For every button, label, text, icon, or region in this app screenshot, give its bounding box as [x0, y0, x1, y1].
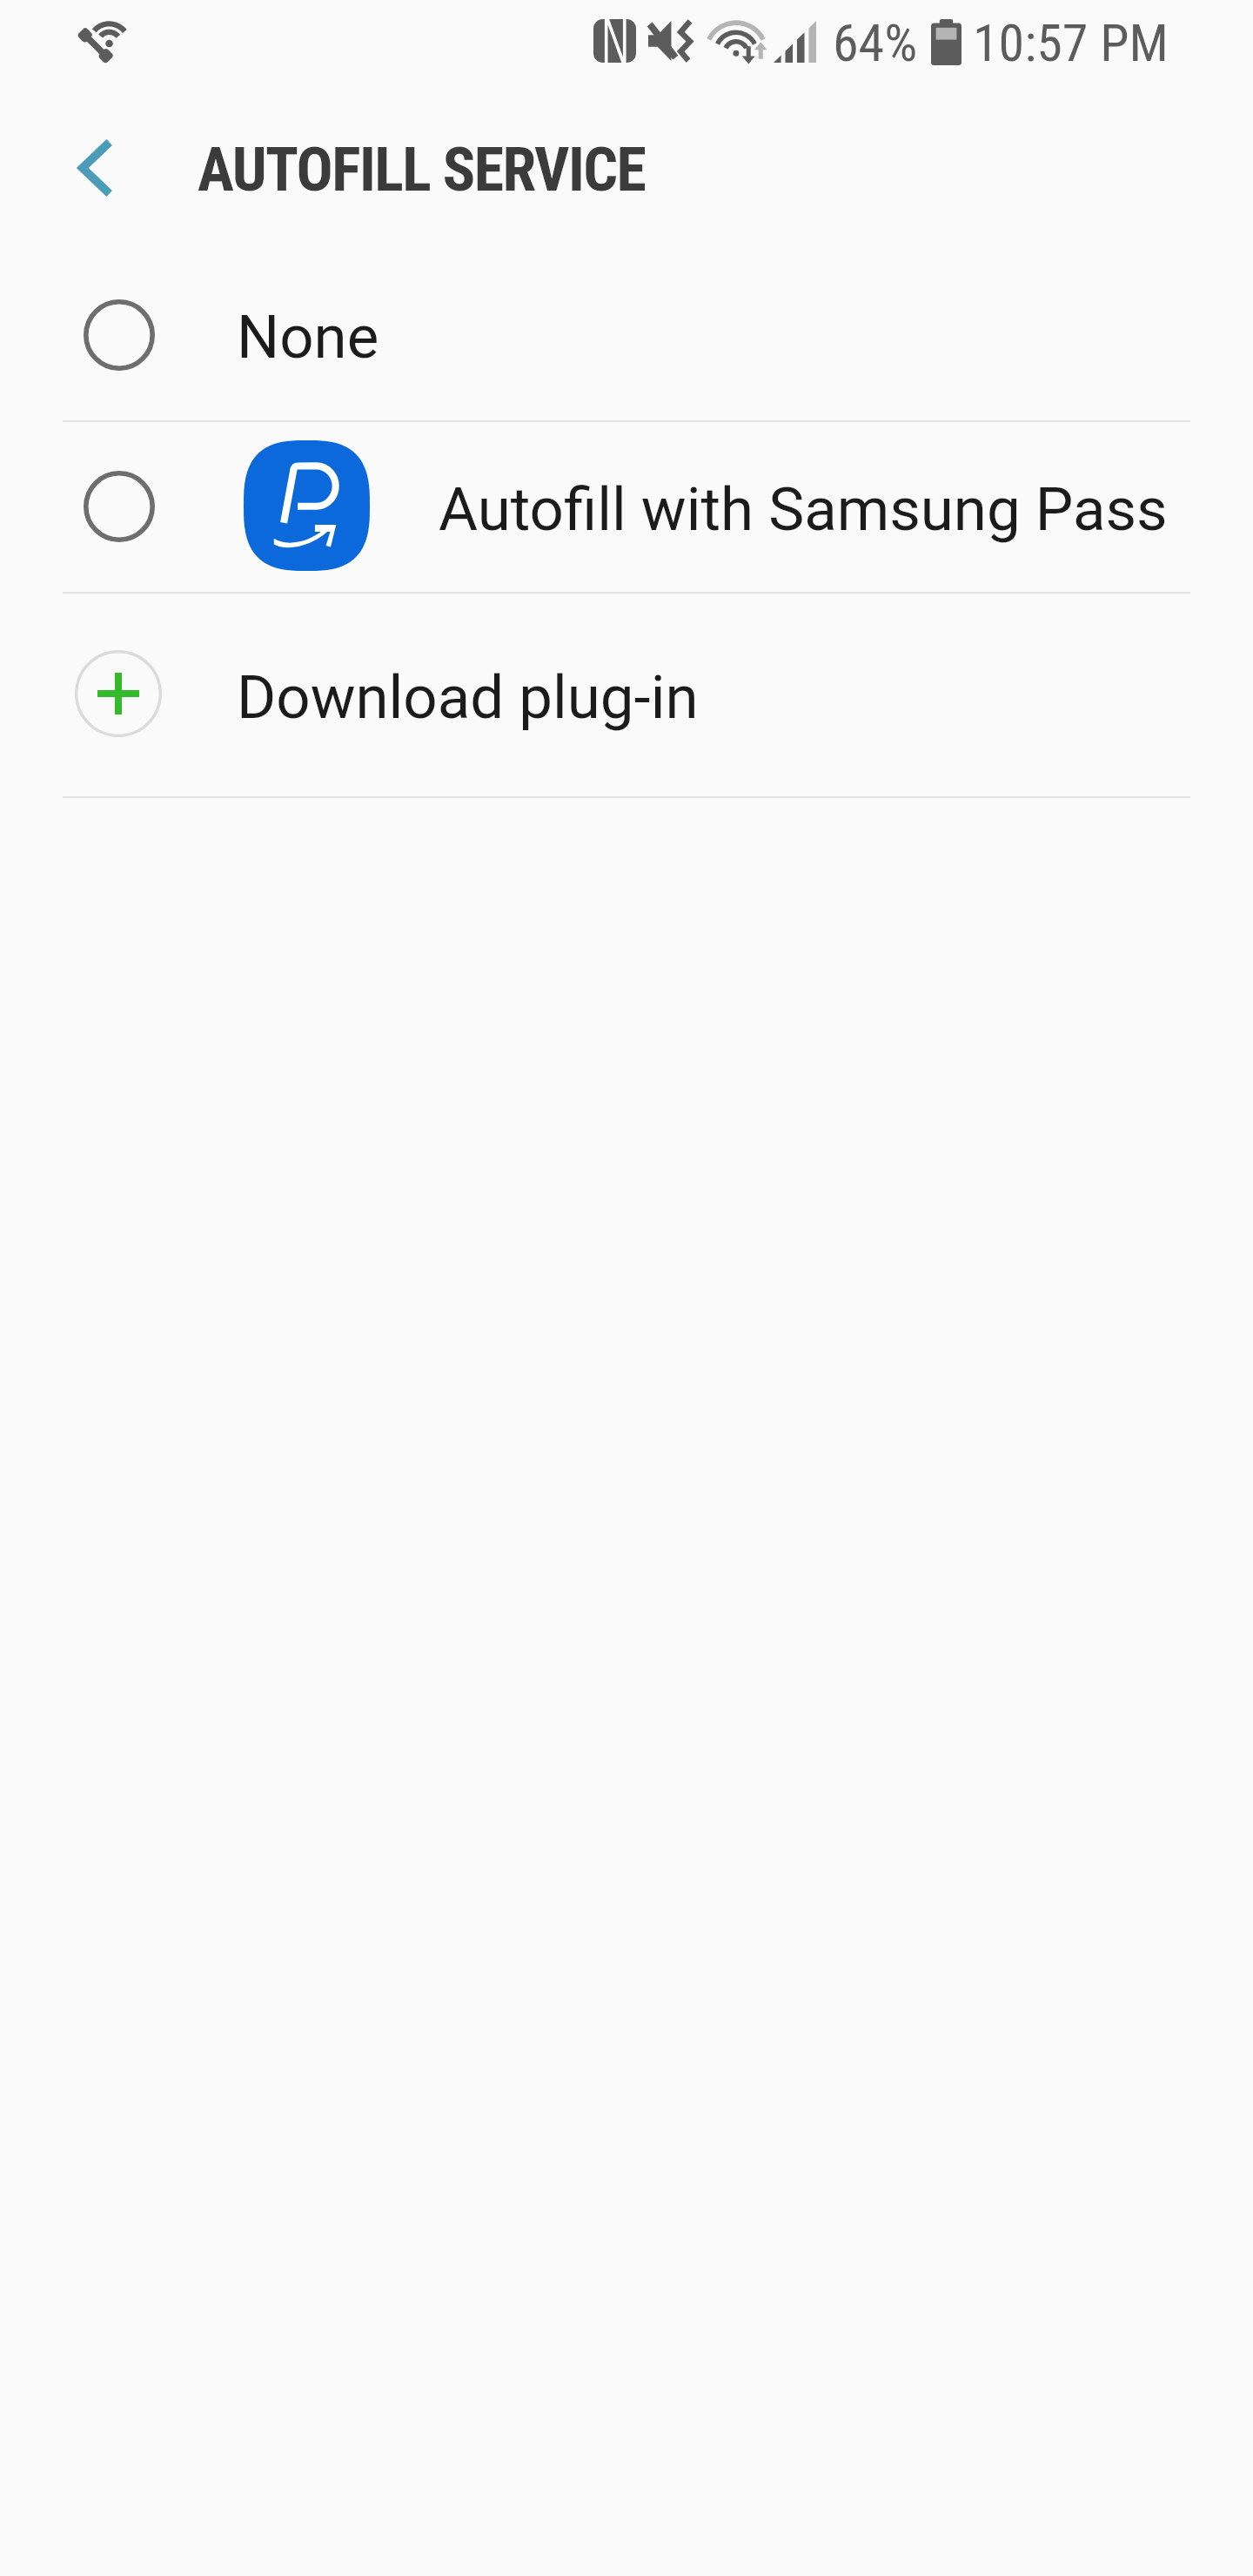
- button[interactable]: Download plug-in: [0, 592, 1253, 796]
- staticText: AUTOFILL SERVICE: [198, 134, 646, 205]
- staticText: None: [237, 302, 379, 372]
- button[interactable]: Autofill with Samsung Pass: [0, 420, 1253, 592]
- staticText: 64%: [833, 12, 918, 73]
- button[interactable]: Navigate up: [31, 103, 160, 231]
- button[interactable]: None: [0, 246, 1253, 420]
- staticText: Download plug-in: [237, 662, 699, 733]
- staticText: 10:57 PM: [973, 12, 1169, 73]
- staticText: Autofill with Samsung Pass: [439, 474, 1168, 545]
